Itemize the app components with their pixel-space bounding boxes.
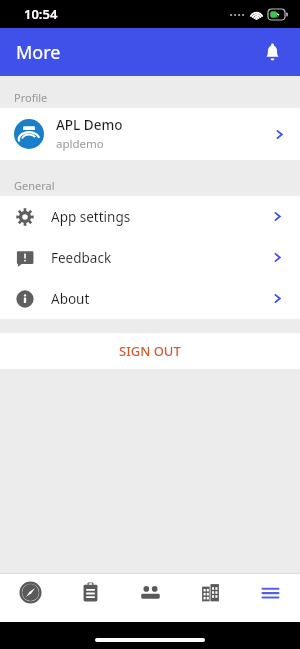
button[interactable]: SIGN OUT: [0, 333, 300, 369]
staticText: SIGN OUT: [119, 342, 181, 360]
staticText: apldemo: [56, 136, 104, 152]
button[interactable]: More: [240, 574, 300, 622]
button[interactable]: Notifications: [252, 32, 292, 72]
button[interactable]: About: [0, 278, 300, 319]
staticText: More: [16, 40, 61, 65]
staticText: 10:54: [24, 5, 58, 23]
staticText: Feedback: [51, 249, 271, 267]
staticText: Profile: [14, 90, 48, 105]
staticText: General: [14, 178, 55, 193]
staticText: About: [51, 290, 271, 308]
button[interactable]: Sites: [180, 574, 240, 622]
button[interactable]: Feedback: [0, 237, 300, 278]
button[interactable]: People: [120, 574, 180, 622]
staticText: APL Demo: [56, 116, 123, 134]
button[interactable]: Tasks: [60, 574, 120, 622]
staticText: App settings: [51, 208, 271, 226]
button[interactable]: Explore: [0, 574, 60, 622]
button[interactable]: APL Demo: [0, 108, 300, 160]
button[interactable]: App settings: [0, 196, 300, 237]
